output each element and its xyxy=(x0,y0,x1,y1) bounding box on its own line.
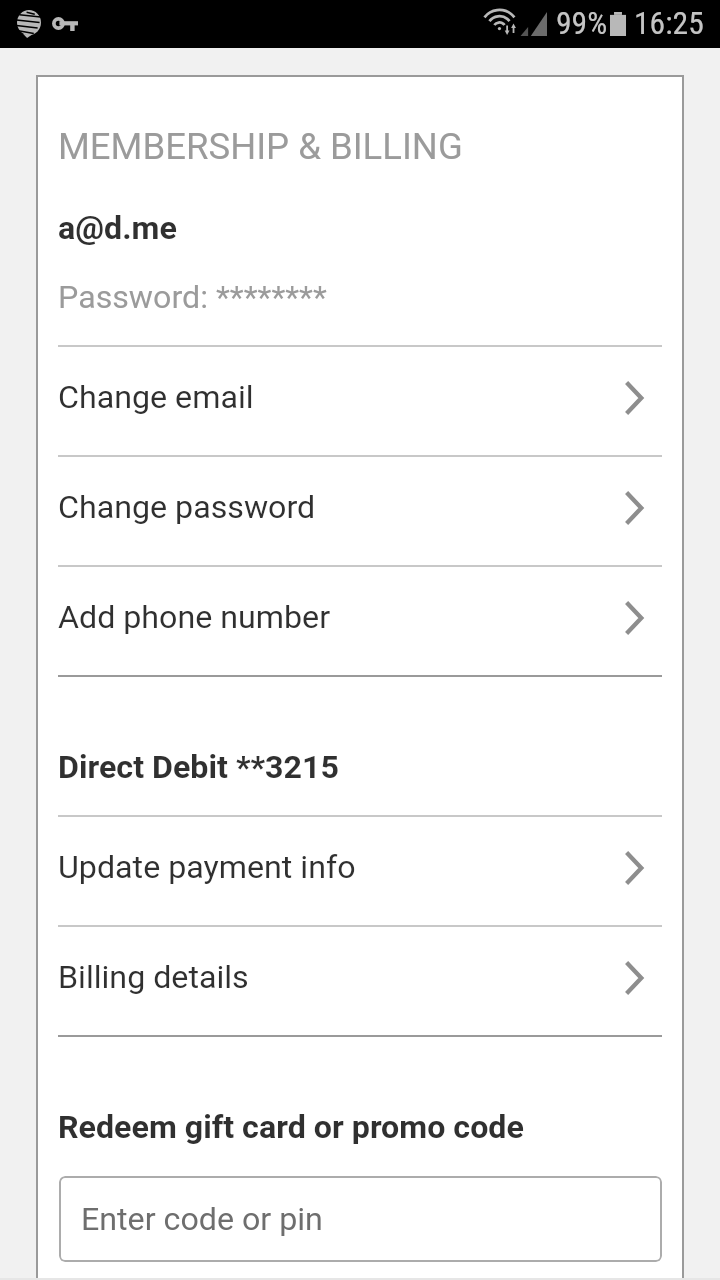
staticText: 99% xyxy=(556,5,608,42)
other: VPN active xyxy=(52,17,78,31)
staticText: MEMBERSHIP & BILLING xyxy=(58,125,463,168)
staticText: Password: ******** xyxy=(58,278,327,316)
staticText: Update payment info xyxy=(58,848,356,886)
button[interactable]: Add phone number xyxy=(38,566,682,675)
other: Billing details xyxy=(623,959,645,997)
staticText: Redeem gift card or promo code xyxy=(58,1108,524,1146)
staticText: Direct Debit **3215 xyxy=(58,748,339,786)
other: Change email xyxy=(623,379,645,417)
other: Wi-Fi xyxy=(486,11,518,36)
staticText: Billing details xyxy=(58,958,249,996)
staticText: Change email xyxy=(58,378,254,416)
staticText: 16:25 xyxy=(634,5,704,42)
other: Change password xyxy=(623,489,645,527)
other: Notification xyxy=(17,10,41,38)
button[interactable]: Change password xyxy=(38,456,682,565)
other: Update payment info xyxy=(623,849,645,887)
button[interactable]: Billing details xyxy=(38,926,682,1035)
staticText: Add phone number xyxy=(58,598,331,636)
staticText: Enter code or pin xyxy=(81,1200,323,1238)
button[interactable]: Change email xyxy=(38,346,682,455)
other: Mobile signal xyxy=(520,12,547,36)
other: Add phone number xyxy=(623,599,645,637)
other: Battery 99 percent xyxy=(609,12,627,36)
button[interactable]: Enter code or pin xyxy=(59,1176,662,1262)
staticText: Change password xyxy=(58,488,316,526)
button[interactable]: Update payment info xyxy=(38,816,682,925)
staticText: a@d.me xyxy=(58,209,177,247)
